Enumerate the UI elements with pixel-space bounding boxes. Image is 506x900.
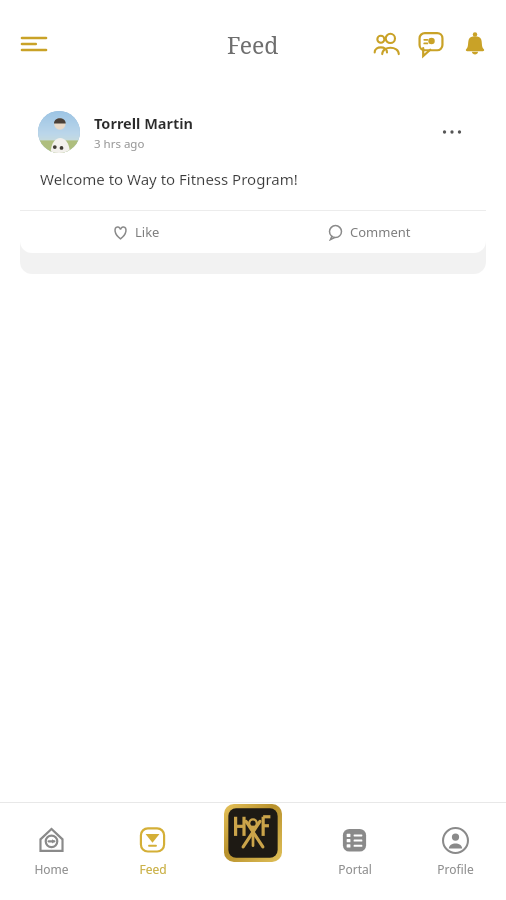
staticText: Home [34, 861, 69, 877]
button[interactable]: Menu [10, 20, 58, 68]
button[interactable]: Portal [304, 803, 405, 900]
button[interactable]: Home logo [224, 804, 282, 862]
staticText: Feed [139, 861, 167, 877]
button[interactable]: Profile [405, 803, 506, 900]
button[interactable]: Messages [410, 23, 452, 65]
staticText: Portal [338, 861, 372, 877]
button[interactable]: Feed [102, 803, 203, 900]
staticText: 3 hrs ago [94, 136, 145, 152]
staticText: Torrell Martin [94, 113, 194, 133]
button[interactable]: More options [432, 112, 472, 152]
button[interactable]: Notifications [454, 23, 496, 65]
button[interactable]: Friends [366, 23, 408, 65]
staticText: Profile [437, 861, 474, 877]
button[interactable]: Comment [253, 211, 486, 253]
button[interactable]: Home [0, 803, 102, 900]
button[interactable]: Like [20, 211, 253, 253]
staticText: Welcome to Way to Fitness Program! [40, 169, 298, 189]
staticText: Comment [350, 223, 411, 241]
staticText: Feed [227, 29, 279, 60]
staticText: Like [135, 223, 160, 241]
